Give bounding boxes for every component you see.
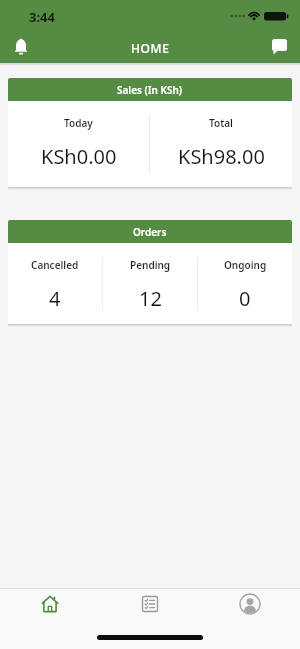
staticText: 12 (139, 285, 162, 312)
staticText: 3:44 (29, 8, 55, 26)
button[interactable] (200, 593, 300, 621)
button[interactable] (0, 593, 100, 621)
button[interactable] (100, 593, 200, 621)
staticText: Today (64, 116, 93, 130)
staticText: KSh0.00 (41, 143, 117, 170)
staticText: 0 (239, 285, 251, 312)
button[interactable] (7, 34, 35, 62)
staticText: 4 (49, 285, 61, 312)
staticText: Cancelled (31, 258, 79, 272)
staticText: Sales (In KSh) (117, 83, 183, 97)
staticText: Total (209, 116, 233, 130)
staticText: Pending (130, 258, 171, 272)
staticText: Orders (133, 225, 167, 239)
button[interactable] (265, 34, 293, 62)
staticText: KSh98.00 (178, 143, 265, 170)
staticText: Ongoing (224, 258, 267, 272)
staticText: HOME (131, 40, 170, 56)
